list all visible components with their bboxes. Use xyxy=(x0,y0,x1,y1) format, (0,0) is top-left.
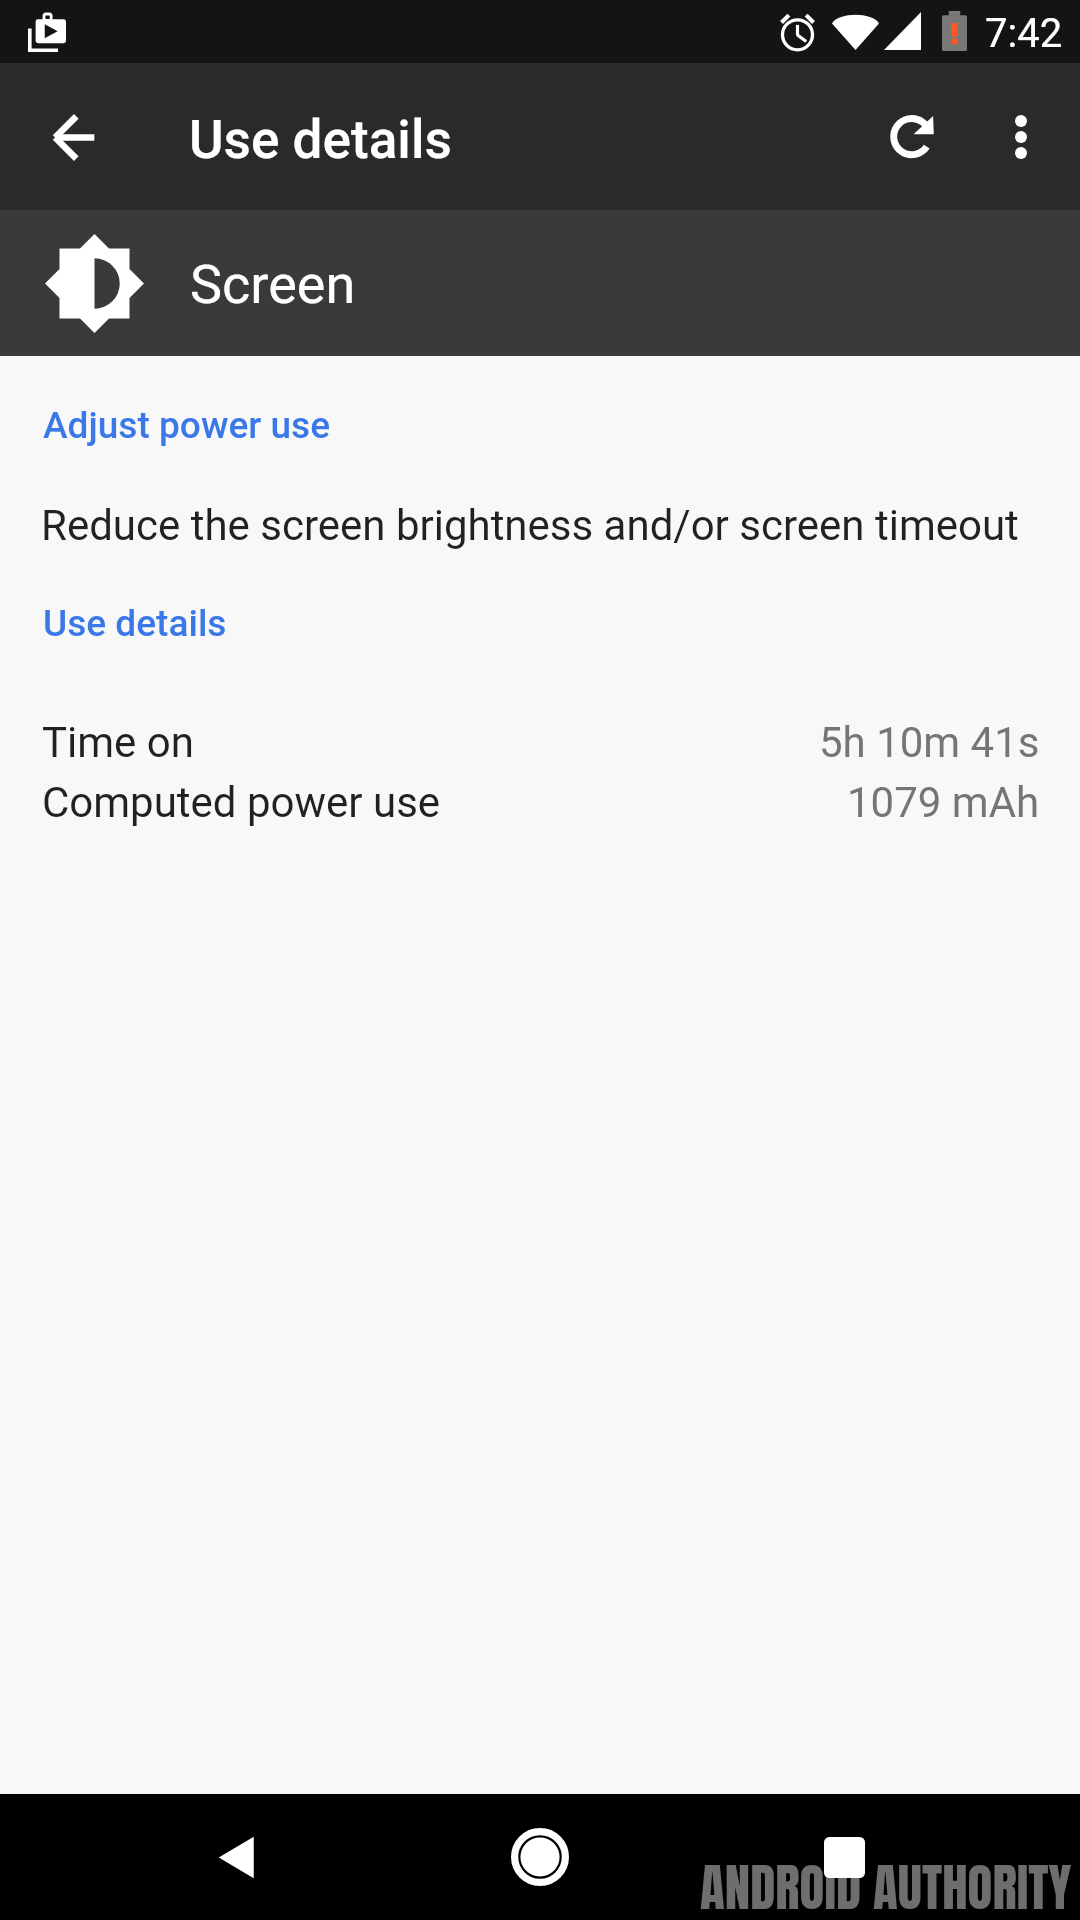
staticText: 1079 mAh xyxy=(847,778,1040,827)
staticText: Time on xyxy=(42,718,194,767)
button[interactable]: Refresh xyxy=(845,70,979,204)
button[interactable]: More options xyxy=(962,78,1079,195)
staticText: Use details xyxy=(189,109,452,171)
staticText: ANDROID AUTHORITY xyxy=(700,1849,1072,1920)
staticText: Use details xyxy=(43,602,227,645)
button[interactable]: Home xyxy=(485,1802,595,1912)
button[interactable]: Adjust power use xyxy=(0,356,1080,572)
staticText: Adjust power use xyxy=(43,404,331,447)
staticText: Screen xyxy=(190,253,356,316)
button[interactable]: Back xyxy=(182,1802,292,1912)
staticText: 5h 10m 41s xyxy=(819,718,1040,767)
staticText: Computed power use xyxy=(42,778,441,827)
staticText: Reduce the screen brightness and/or scre… xyxy=(41,501,1019,550)
button[interactable]: Navigate up xyxy=(8,72,138,202)
button[interactable]: Recent apps xyxy=(789,1802,899,1912)
staticText: 7:42 xyxy=(985,10,1063,57)
